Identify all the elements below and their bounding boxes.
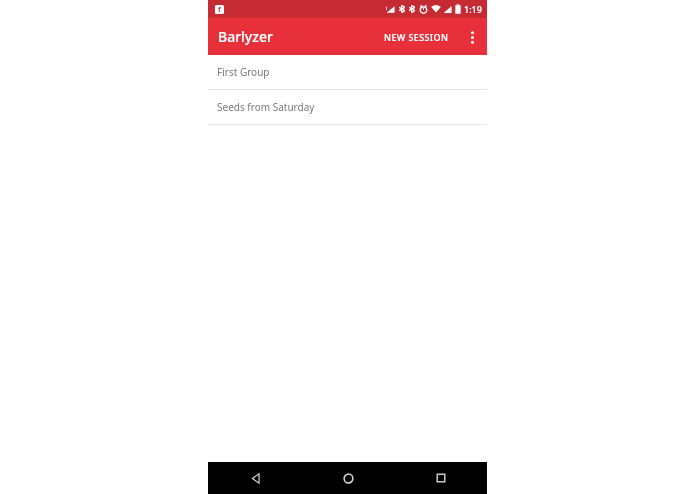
button[interactable]: First Group (208, 55, 487, 89)
staticText: Barlyzer (218, 27, 273, 46)
staticText: 1:19 (464, 3, 482, 15)
button[interactable]: Seeds from Saturday (208, 90, 487, 124)
staticText: Seeds from Saturday (217, 100, 315, 114)
button[interactable]: NEW SESSION (376, 23, 457, 51)
button[interactable]: Home (330, 462, 366, 494)
staticText: f (218, 5, 221, 14)
staticText: NEW SESSION (384, 31, 449, 43)
button[interactable]: More options (457, 22, 487, 52)
button[interactable]: Back (237, 462, 273, 494)
button[interactable]: Recents (423, 462, 459, 494)
staticText: First Group (217, 65, 270, 79)
